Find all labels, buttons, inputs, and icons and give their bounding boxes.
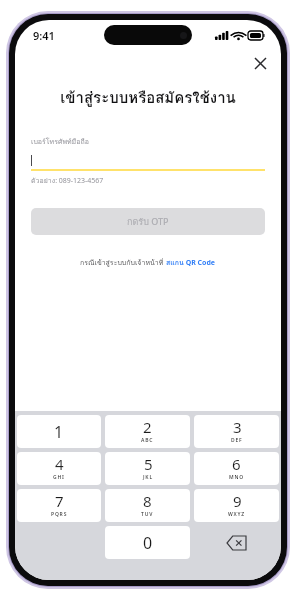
staticText: PQRS — [51, 511, 68, 518]
button[interactable]: เบอร์โทรศัพท์มือถือ — [31, 136, 265, 186]
button[interactable]: Close — [247, 50, 273, 76]
staticText: 3 — [233, 417, 242, 437]
button[interactable]: 8 — [105, 489, 190, 522]
staticText: เข้าสู่ระบบหรือสมัครใช้งาน — [31, 86, 265, 110]
staticText: GHI — [53, 474, 65, 481]
staticText: MNO — [229, 474, 244, 481]
staticText: JKL — [143, 474, 153, 481]
staticText: ตัวอย่าง: 089-123-4567 — [31, 175, 104, 186]
button[interactable]: 6 — [194, 452, 279, 485]
button[interactable]: 4 — [17, 452, 101, 485]
button[interactable]: 9 — [194, 489, 279, 522]
button[interactable]: 3 — [194, 415, 279, 448]
button[interactable]: สแกน QR Code — [166, 257, 216, 268]
button[interactable]: 5 — [105, 452, 190, 485]
staticText: WXYZ — [228, 511, 246, 518]
button[interactable]: กดรับ OTP — [31, 208, 265, 235]
staticText: สแกน QR Code — [166, 257, 216, 268]
staticText: 7 — [55, 491, 64, 511]
staticText: 9 — [233, 491, 242, 511]
staticText: กดรับ OTP — [127, 215, 169, 229]
staticText: TUV — [141, 511, 154, 518]
staticText: 2 — [143, 417, 152, 437]
staticText: 9:41 — [33, 28, 55, 43]
staticText: 0 — [143, 532, 153, 554]
button[interactable]: 0 — [105, 526, 190, 559]
staticText: ABC — [141, 437, 154, 444]
staticText: 6 — [232, 454, 241, 474]
staticText: DEF — [231, 437, 243, 444]
button[interactable]: 2 — [105, 415, 190, 448]
button[interactable]: Backspace — [194, 526, 279, 559]
button[interactable]: 1 — [17, 415, 101, 448]
staticText: 8 — [143, 491, 152, 511]
staticText: 4 — [55, 454, 64, 474]
staticText: 5 — [144, 454, 153, 474]
staticText: 1 — [54, 421, 64, 443]
staticText: กรณีเข้าสู่ระบบกับเจ้าหน้าที่ — [80, 257, 166, 268]
staticText: เบอร์โทรศัพท์มือถือ — [31, 136, 89, 147]
button[interactable]: 7 — [17, 489, 101, 522]
